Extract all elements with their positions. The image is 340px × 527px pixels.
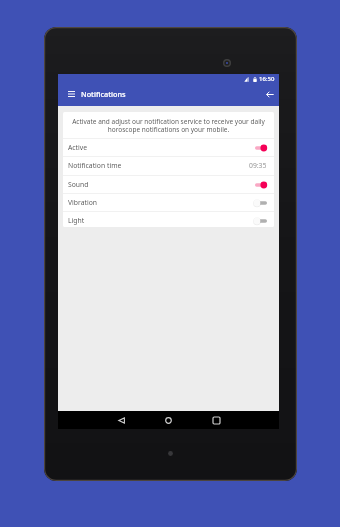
staticText: Active [68, 143, 88, 152]
staticText: Activate and adjust our notification ser… [71, 117, 266, 134]
staticText: Vibration [68, 198, 98, 207]
button[interactable]: Back [263, 87, 277, 101]
staticText: Notification time [68, 161, 122, 170]
staticText: 09:35 [249, 161, 267, 170]
staticText: Sound [68, 180, 89, 189]
button[interactable]: Open navigation menu [64, 87, 78, 101]
button[interactable]: Recent apps [207, 411, 225, 429]
button[interactable]: Notification time [63, 157, 274, 174]
staticText: 16:50 [259, 75, 275, 83]
button[interactable]: Off [255, 215, 267, 227]
staticText: Notifications [81, 89, 126, 99]
button[interactable]: On [255, 142, 267, 154]
button[interactable]: Light [63, 212, 274, 227]
button[interactable]: Back [112, 411, 130, 429]
button[interactable]: On [255, 179, 267, 191]
button[interactable]: Home [159, 411, 177, 429]
button[interactable]: Sound [63, 176, 274, 193]
button[interactable]: Active [63, 139, 274, 156]
button[interactable]: Vibration [63, 194, 274, 211]
button[interactable]: Off [255, 197, 267, 209]
staticText: Light [68, 216, 85, 225]
